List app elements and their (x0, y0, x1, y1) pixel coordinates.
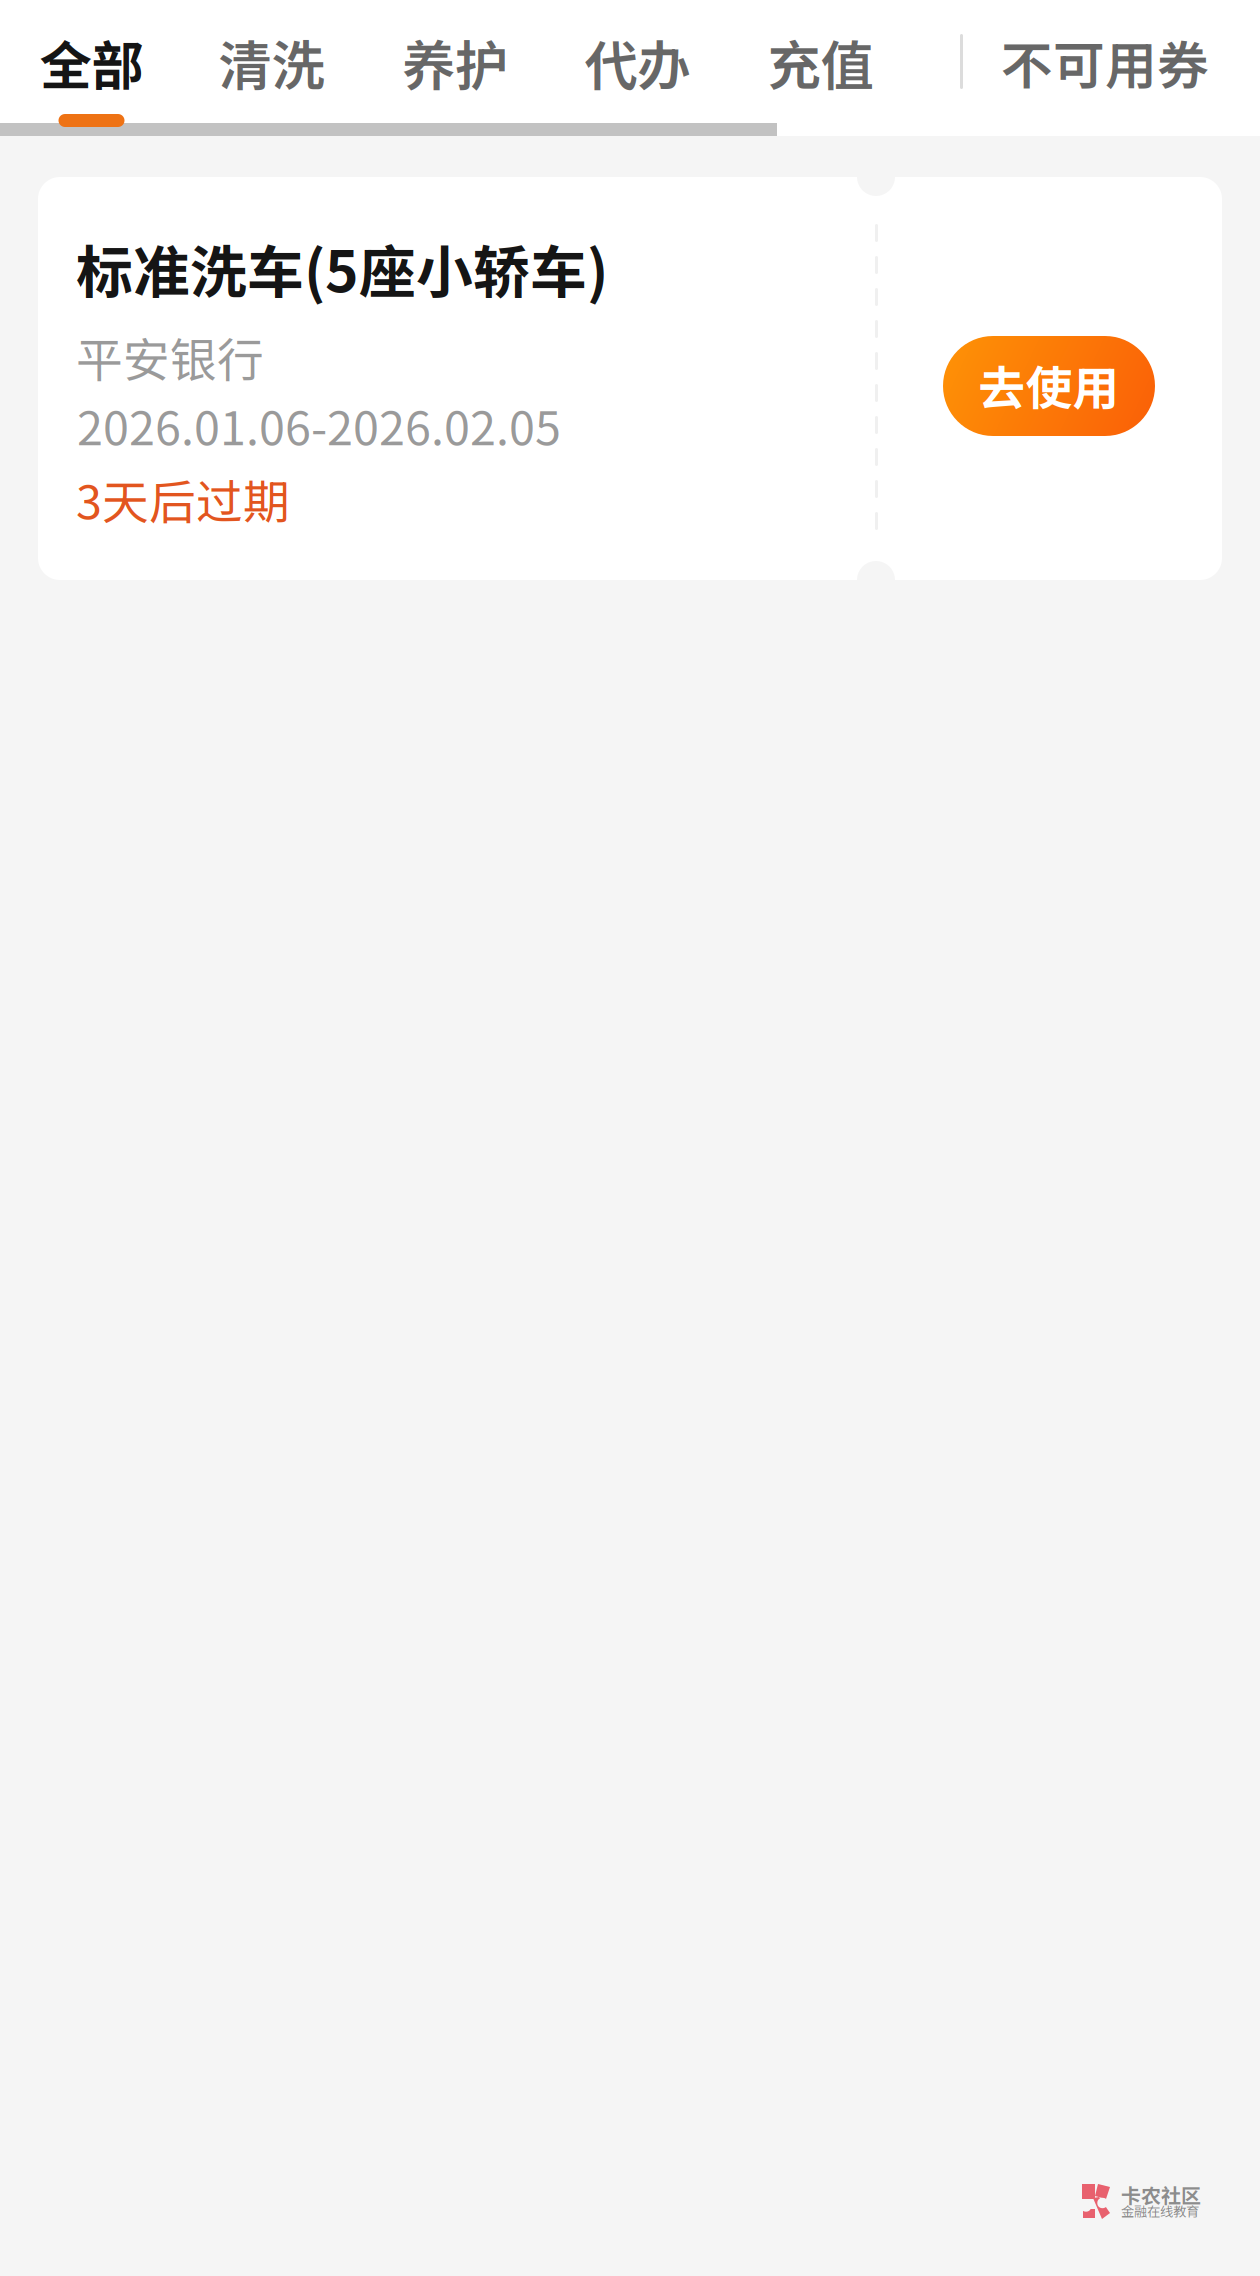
staticText: 3天后过期 (76, 465, 290, 533)
button[interactable]: 全部 (4, 0, 179, 136)
staticText: 不可用券 (1001, 24, 1209, 99)
button[interactable]: 清洗 (179, 0, 364, 136)
staticText: 2026.01.06-2026.02.05 (77, 391, 561, 459)
staticText: 代办 (584, 23, 690, 101)
staticText: 去使用 (978, 351, 1119, 419)
staticText: 清洗 (218, 23, 324, 101)
button[interactable]: 去使用 (943, 336, 1155, 436)
staticText: 卡农社区 (1121, 2180, 1201, 2209)
staticText: 标准洗车(5座小轿车) (76, 227, 608, 309)
staticText: 充值 (767, 23, 873, 101)
button[interactable]: 不可用券 (996, 0, 1214, 136)
staticText: 全部 (39, 24, 143, 100)
button[interactable]: 充值 (729, 0, 912, 136)
staticText: 养护 (402, 23, 508, 101)
button[interactable]: 养护 (364, 0, 546, 136)
staticText: 平安银行 (76, 323, 264, 391)
staticText: 金融在线教育 (1121, 2201, 1199, 2220)
button[interactable]: 代办 (546, 0, 729, 136)
